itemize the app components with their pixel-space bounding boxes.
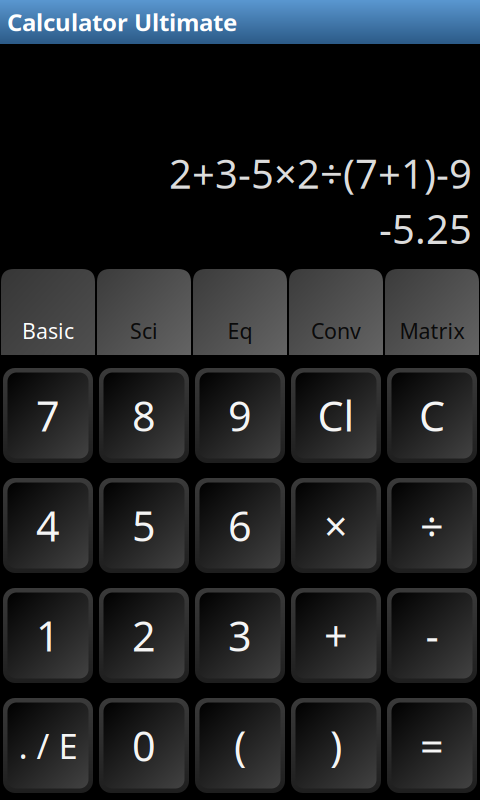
staticText: ) [330,718,342,773]
staticText: 7 [36,388,60,443]
staticText: 0 [132,718,156,773]
button[interactable]: - [387,588,477,683]
staticText: 3 [228,608,252,663]
staticText: Basic [22,317,74,345]
staticText: . / E [18,722,77,768]
button[interactable]: 0 [99,698,189,793]
button[interactable]: 7 [3,368,93,463]
button[interactable]: 6 [195,478,285,573]
staticText: Matrix [399,317,464,345]
staticText: 5 [132,498,156,553]
button[interactable]: 9 [195,368,285,463]
button[interactable]: . / E [3,698,93,793]
button[interactable]: + [291,588,381,683]
button[interactable]: Sci [96,269,192,355]
staticText: Conv [311,317,361,345]
staticText: 2+3-5×2÷(7+1)-9 [169,147,472,200]
staticText: + [324,608,348,663]
staticText: 9 [228,388,252,443]
button[interactable]: Cl [291,368,381,463]
button[interactable]: ÷ [387,478,477,573]
staticText: × [324,498,348,553]
button[interactable]: × [291,478,381,573]
button[interactable]: 2 [99,588,189,683]
button[interactable]: 3 [195,588,285,683]
staticText: 4 [36,498,60,553]
button[interactable]: ) [291,698,381,793]
staticText: Calculator Ultimate [7,6,237,38]
staticText: = [420,718,444,773]
staticText: ( [234,718,246,773]
staticText: C [419,388,445,443]
button[interactable]: C [387,368,477,463]
staticText: 2 [132,608,156,663]
button[interactable]: 1 [3,588,93,683]
staticText: 8 [132,388,156,443]
button[interactable]: = [387,698,477,793]
button[interactable]: Matrix [384,269,480,355]
staticText: 1 [36,608,60,663]
button[interactable]: 5 [99,478,189,573]
button[interactable]: Eq [192,269,288,355]
button[interactable]: ( [195,698,285,793]
staticText: Eq [227,317,252,345]
staticText: 6 [228,498,252,553]
staticText: Cl [317,388,354,443]
staticText: -5.25 [379,202,472,255]
staticText: ÷ [420,498,444,553]
staticText: - [425,608,438,663]
button[interactable]: 4 [3,478,93,573]
button[interactable]: Basic [0,269,96,355]
button[interactable]: 8 [99,368,189,463]
staticText: Sci [130,317,158,345]
button[interactable]: Conv [288,269,384,355]
